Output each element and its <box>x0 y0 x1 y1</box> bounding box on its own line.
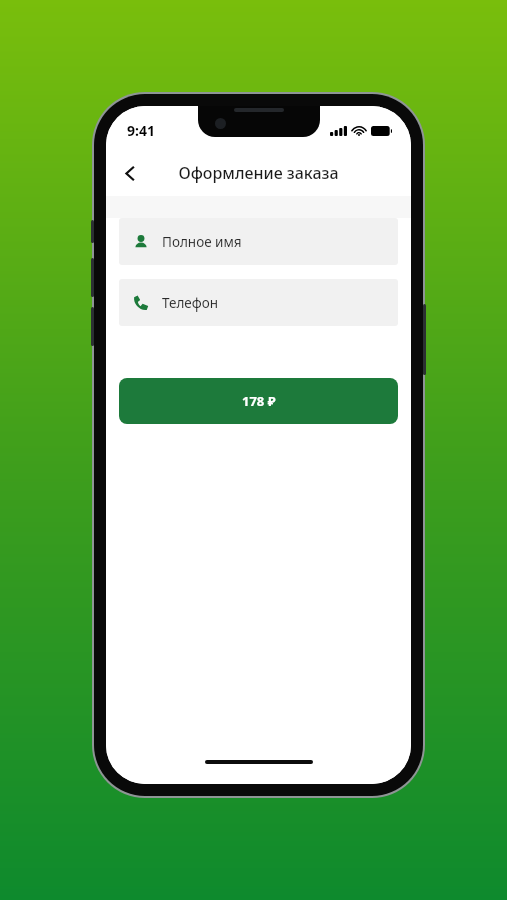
button[interactable]: 178 ₽ <box>119 378 398 424</box>
staticText: Полное имя <box>162 233 242 251</box>
staticText: Оформление заказа <box>178 162 339 184</box>
staticText: 9:41 <box>127 121 155 140</box>
button[interactable]: Полное имя <box>119 218 398 265</box>
staticText: Телефон <box>162 294 219 312</box>
staticText: 178 ₽ <box>242 392 276 410</box>
button[interactable]: Телефон <box>119 279 398 326</box>
button[interactable]: Назад <box>109 152 151 194</box>
